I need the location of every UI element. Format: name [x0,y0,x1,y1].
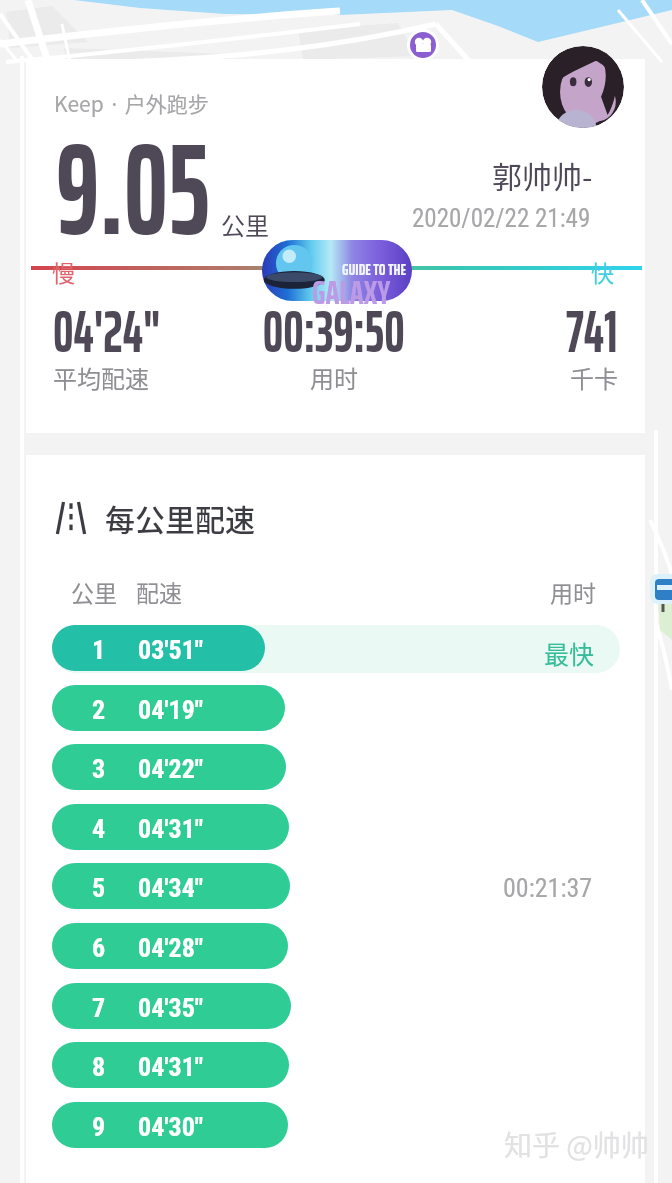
button[interactable]: 7 [52,983,620,1031]
staticText: 04'35" [138,993,204,1023]
staticText: Keep · 户外跑步 [54,88,209,118]
staticText: 9 [92,1112,106,1142]
staticText: GUIDE TO THE [342,257,407,282]
staticText: 公里 [221,207,269,242]
staticText: 用时 [310,360,358,395]
staticText: 1 [92,635,106,665]
staticText: 郭帅帅- [492,153,593,196]
staticText: 04'19" [138,695,204,725]
staticText: 4 [92,814,106,844]
button[interactable]: 最快 [52,625,620,673]
staticText: 00:21:37 [503,873,593,903]
staticText: 04'28" [138,933,204,963]
staticText: 2 [92,695,106,725]
staticText: 2020/02/22 21:49 [412,204,591,233]
staticText: 平均配速 [53,360,149,395]
button[interactable]: Keep · 户外跑步 [26,59,645,433]
staticText: 5 [92,873,106,903]
staticText: 8 [92,1052,106,1082]
staticText: 慢 [52,255,75,288]
button[interactable]: 3 [52,744,620,792]
button[interactable]: 4 [52,804,620,852]
staticText: 04'24" [53,285,161,378]
staticText: 741 [566,285,618,378]
staticText: 04'34" [138,873,204,903]
staticText: GALAXY [312,267,391,319]
staticText: 00:39:50 [263,285,405,378]
staticText: 最快 [544,635,595,671]
staticText: 公里 [71,575,117,608]
staticText: 03'51" [138,635,204,665]
staticText: 9.05 [56,88,211,291]
staticText: 04'31" [138,814,204,844]
staticText: 用时 [550,575,596,608]
staticText: 04'30" [138,1112,204,1142]
staticText: 6 [92,933,106,963]
button[interactable]: 5 [52,863,620,911]
staticText: 3 [92,754,106,784]
staticText: 千卡 [570,360,618,395]
staticText: 快 [591,255,614,288]
staticText: 7 [92,993,106,1023]
staticText: 04'31" [138,1052,204,1082]
staticText: 知乎 @帅帅 [504,1124,649,1165]
button[interactable]: Profile avatar [542,46,624,128]
button[interactable]: 6 [52,923,620,971]
button[interactable]: 2 [52,685,620,733]
staticText: 04'22" [138,754,204,784]
staticText: 每公里配速 [105,496,255,539]
button[interactable]: 8 [52,1042,620,1090]
staticText: 配速 [136,575,182,608]
button[interactable]: 9 [52,1102,620,1150]
